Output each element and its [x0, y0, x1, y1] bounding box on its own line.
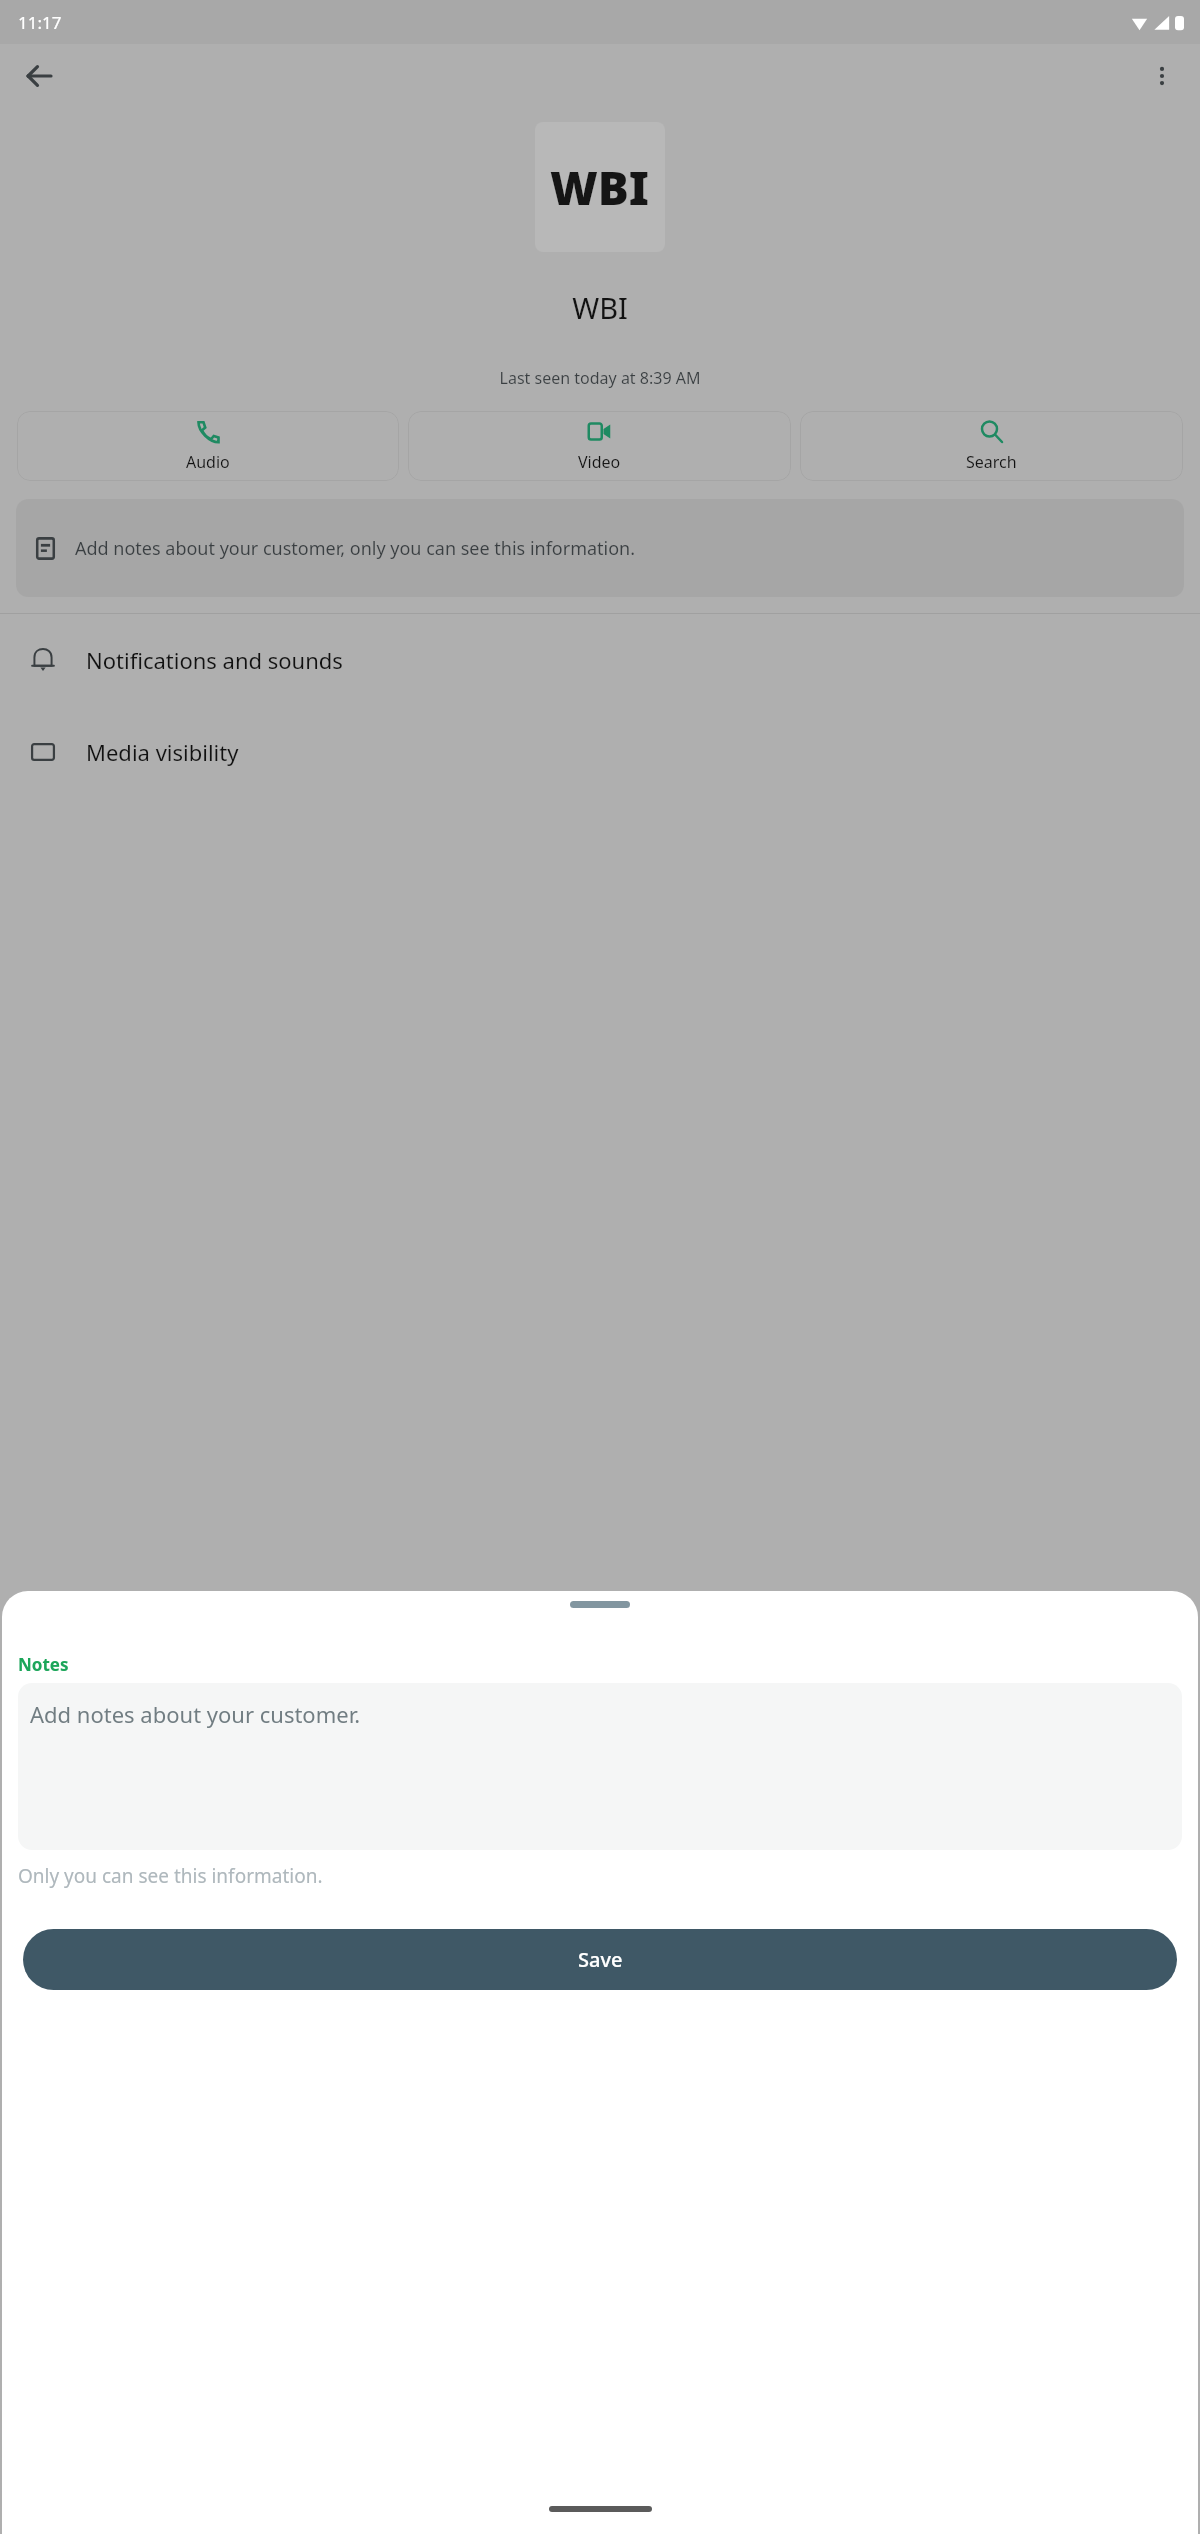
button[interactable]: Back [14, 52, 62, 100]
staticText: Add notes about your customer. [30, 1699, 361, 1729]
button[interactable]: Media visibility [0, 706, 1200, 798]
staticText: Only you can see this information. [18, 1863, 323, 1889]
staticText: 11:17 [18, 11, 62, 34]
button[interactable]: Save [23, 1929, 1177, 1990]
button[interactable]: Search [800, 411, 1183, 481]
staticText: WBI [550, 156, 650, 219]
button[interactable]: More options [1138, 52, 1186, 100]
staticText: Notifications and sounds [86, 645, 343, 675]
button[interactable]: Add notes about your customer, only you … [16, 499, 1184, 597]
button[interactable]: Add notes about your customer. [18, 1683, 1182, 1850]
button[interactable]: Notifications and sounds [0, 614, 1200, 706]
button[interactable]: Video [408, 411, 791, 481]
staticText: Last seen today at 8:39 AM [0, 367, 1200, 389]
staticText: Search [966, 451, 1017, 473]
staticText: Save [578, 1946, 623, 1973]
staticText: WBI [0, 288, 1200, 327]
staticText: Audio [186, 451, 230, 473]
button[interactable]: Audio [17, 411, 399, 481]
staticText: Media visibility [86, 737, 239, 767]
staticText: Video [578, 451, 621, 473]
staticText: Add notes about your customer, only you … [75, 536, 636, 561]
staticText: Notes [18, 1653, 69, 1676]
